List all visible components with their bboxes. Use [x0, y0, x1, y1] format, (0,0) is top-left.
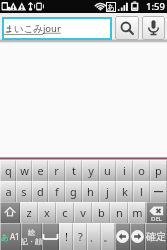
button[interactable]: k — [116, 181, 133, 202]
button[interactable]: f — [48, 181, 65, 202]
staticText: p — [155, 163, 162, 178]
staticText: まいこみjour — [4, 22, 61, 35]
staticText: 、 — [89, 230, 100, 244]
staticText: a — [5, 184, 12, 199]
staticText: s — [21, 184, 27, 199]
button[interactable]: s — [16, 181, 32, 202]
button[interactable]: y — [82, 160, 99, 181]
staticText: q — [5, 163, 12, 178]
button[interactable]: g — [65, 181, 82, 202]
button[interactable]: h — [82, 181, 99, 202]
button[interactable]: m — [128, 202, 146, 223]
staticText: f — [55, 184, 59, 199]
button[interactable]: w — [16, 160, 32, 181]
button[interactable]: Voice search — [142, 16, 165, 40]
button[interactable]: a — [0, 181, 16, 202]
staticText: n — [116, 205, 123, 220]
staticText: あ — [107, 2, 116, 12]
staticText: 確定 — [146, 230, 166, 243]
button[interactable]: c — [56, 202, 74, 223]
staticText: h — [87, 184, 94, 199]
staticText: m — [132, 205, 143, 220]
button[interactable]: 確定 — [145, 223, 167, 250]
button[interactable]: l — [133, 181, 150, 202]
button[interactable]: v — [74, 202, 92, 223]
button[interactable]: ? — [73, 223, 87, 250]
staticText: l — [140, 184, 143, 199]
button[interactable]: Input mode — [0, 223, 21, 250]
button[interactable]: e — [32, 160, 48, 181]
button[interactable]: d — [32, 181, 48, 202]
button[interactable]: x — [38, 202, 56, 223]
button[interactable]: b — [92, 202, 110, 223]
staticText: g — [70, 184, 77, 199]
staticText: v — [80, 205, 86, 220]
staticText: o — [138, 163, 145, 178]
staticText: b — [98, 205, 105, 220]
button[interactable]: 、 — [87, 223, 101, 250]
button[interactable]: 。 — [101, 223, 115, 250]
button[interactable]: j — [99, 181, 116, 202]
button[interactable]: z — [20, 202, 38, 223]
staticText: e — [37, 163, 44, 178]
button[interactable]: ! — [59, 223, 73, 250]
staticText: r — [54, 163, 59, 178]
staticText: x — [44, 205, 50, 220]
button[interactable]: q — [0, 160, 16, 181]
staticText: k — [122, 184, 128, 199]
button[interactable]: o — [133, 160, 150, 181]
button[interactable]: p — [150, 160, 167, 181]
button[interactable]: Shift — [0, 202, 20, 223]
staticText: 絵 記・顔 — [21, 228, 42, 246]
staticText: i — [123, 163, 126, 178]
staticText: あ — [1, 232, 10, 242]
button[interactable]: n — [110, 202, 128, 223]
button[interactable]: Space — [42, 223, 59, 250]
staticText: j — [106, 184, 109, 199]
button[interactable]: i — [116, 160, 133, 181]
staticText: w — [20, 163, 29, 178]
staticText: 。 — [103, 230, 114, 244]
staticText: ー — [153, 185, 164, 199]
button[interactable]: まいこみjour — [2, 17, 112, 40]
staticText: DEL — [151, 215, 162, 223]
button[interactable]: Delete — [146, 202, 167, 223]
staticText: 1:59 — [146, 0, 165, 13]
button[interactable]: 絵 記・顔 — [21, 223, 42, 250]
button[interactable]: Search — [115, 16, 139, 40]
staticText: t — [72, 163, 76, 178]
staticText: y — [88, 163, 94, 178]
button[interactable]: u — [99, 160, 116, 181]
staticText: ! — [65, 229, 68, 244]
staticText: c — [62, 205, 68, 220]
staticText: u — [104, 163, 111, 178]
button[interactable]: r — [48, 160, 65, 181]
button[interactable]: Cursor right — [130, 223, 145, 250]
button[interactable]: ー — [150, 181, 167, 202]
staticText: ? — [78, 229, 83, 244]
staticText: d — [37, 184, 44, 199]
staticText: z — [26, 205, 32, 220]
button[interactable]: t — [65, 160, 82, 181]
button[interactable]: Cursor left — [115, 223, 130, 250]
staticText: A1 — [10, 231, 20, 242]
